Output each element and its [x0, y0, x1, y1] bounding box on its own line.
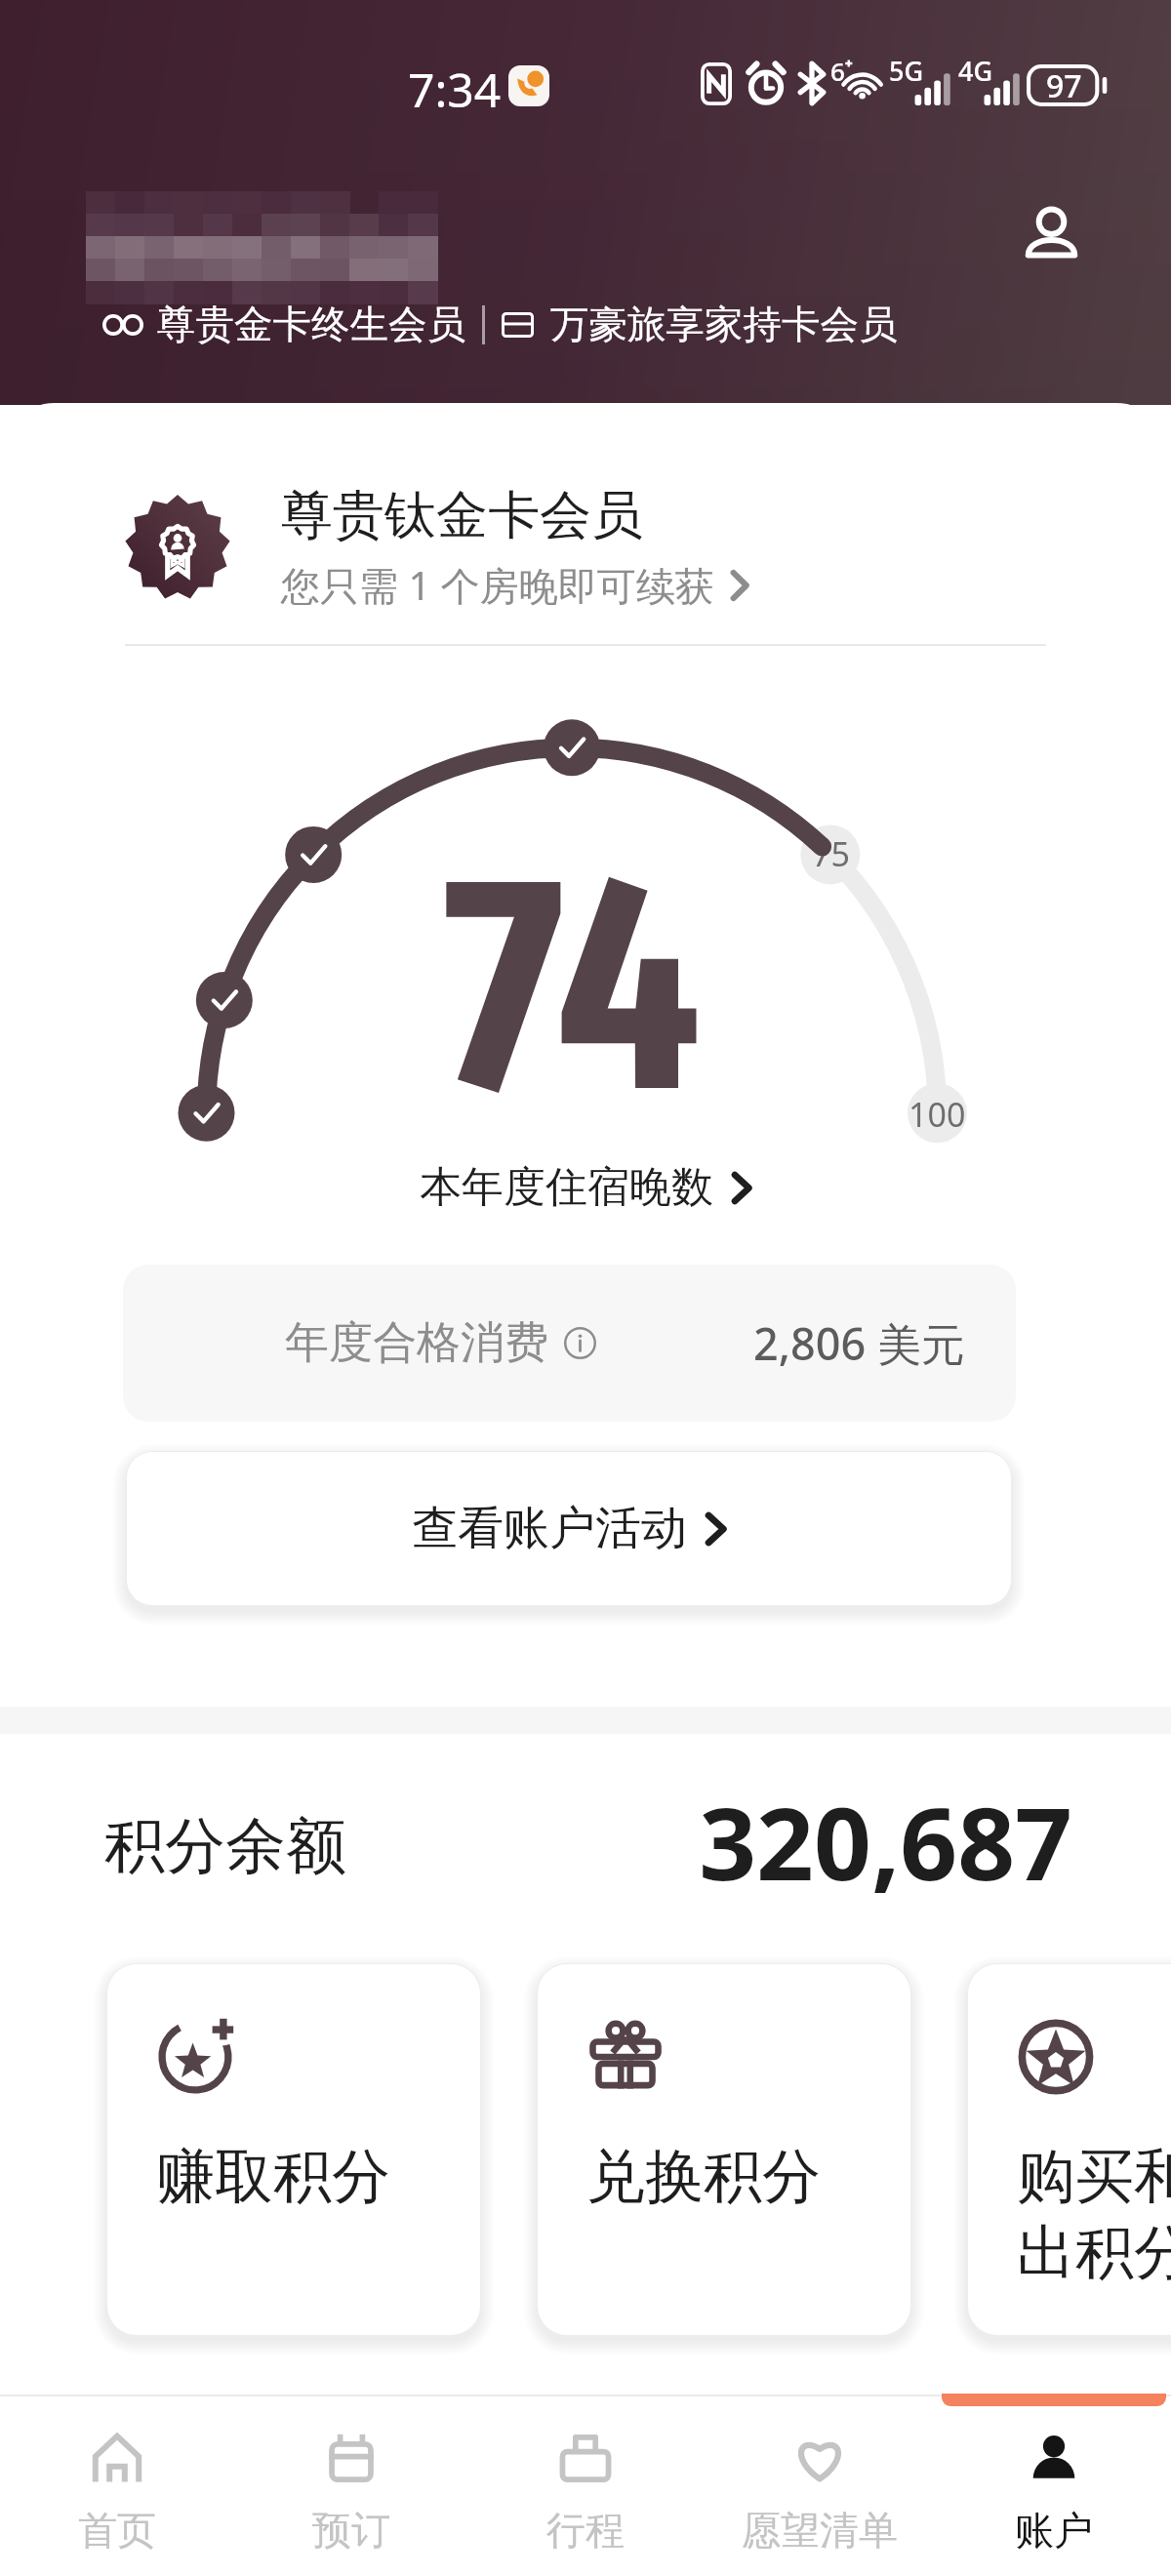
button[interactable]: 查看账户活动	[127, 1452, 1011, 1605]
staticText: 万豪旅享家持卡会员	[550, 301, 898, 349]
staticText: 您只需 1 个房晚即可续获	[281, 558, 714, 612]
staticText: 赚取积分	[156, 2140, 390, 2214]
staticText: 6	[830, 54, 845, 88]
staticText: 愿望清单	[742, 2506, 898, 2555]
staticText: 购买和转 出积分	[1017, 2140, 1171, 2290]
staticText: 74	[444, 803, 701, 1168]
staticText: 75	[812, 831, 850, 876]
staticText: 本年度住宿晚数	[420, 1161, 713, 1214]
button[interactable]: 购买和转 出积分	[968, 1964, 1171, 2335]
button[interactable]: Profile	[1024, 209, 1079, 260]
button[interactable]: 年度合格消费	[123, 1265, 1016, 1422]
button[interactable]: 预订	[234, 2396, 468, 2576]
staticText: 年度合格消费	[285, 1315, 548, 1371]
staticText: 7:34	[408, 58, 502, 121]
staticText: 查看账户活动	[412, 1500, 687, 1557]
button[interactable]: 本年度住宿晚数	[0, 1161, 1171, 1214]
staticText: 4G	[958, 53, 993, 89]
button[interactable]: 账户	[937, 2396, 1171, 2576]
button[interactable]: 兑换积分	[538, 1964, 910, 2335]
staticText: 5G	[889, 53, 924, 89]
button[interactable]: 首页	[0, 2396, 234, 2576]
staticText: 账户	[1015, 2506, 1093, 2555]
staticText: 兑换积分	[586, 2140, 821, 2214]
staticText: 行程	[546, 2506, 625, 2555]
button[interactable]: 行程	[468, 2396, 703, 2576]
staticText: 100	[909, 1092, 966, 1137]
button[interactable]: 尊贵钛金卡会员	[125, 483, 1093, 612]
staticText: 2,806 美元	[753, 1313, 965, 1373]
button[interactable]: 赚取积分	[107, 1964, 480, 2335]
staticText: 尊贵钛金卡会员	[281, 483, 643, 548]
staticText: 320,687	[699, 1773, 1072, 1910]
button[interactable]: 愿望清单	[703, 2396, 937, 2576]
staticText: 预订	[312, 2506, 390, 2555]
staticText: 首页	[78, 2506, 156, 2555]
staticText: 积分余额	[104, 1808, 346, 1884]
staticText: 97	[1046, 64, 1082, 106]
staticText: 尊贵金卡终生会员	[157, 301, 465, 349]
